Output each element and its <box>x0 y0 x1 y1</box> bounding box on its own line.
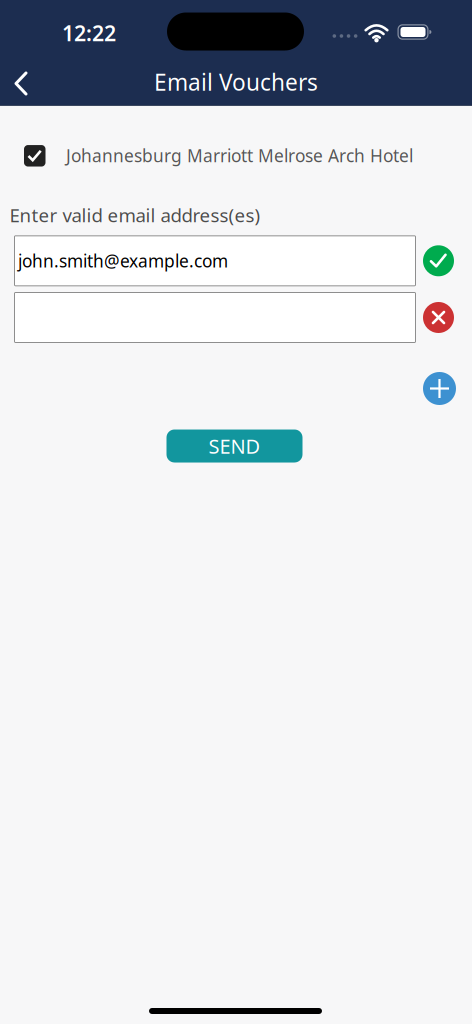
button[interactable]: Add email address <box>423 372 456 405</box>
button[interactable]: Email address 2 <box>14 292 416 343</box>
staticText: john.smith@example.com <box>18 249 228 272</box>
staticText: Johannesburg Marriott Melrose Arch Hotel <box>66 144 413 167</box>
button[interactable]: SEND <box>166 429 302 462</box>
staticText: 12:22 <box>62 19 116 47</box>
staticText: Email Vouchers <box>154 67 318 97</box>
staticText: SEND <box>208 433 260 459</box>
button[interactable]: Johannesburg Marriott Melrose Arch Hotel… <box>24 145 45 167</box>
button[interactable]: Back <box>0 61 43 105</box>
button[interactable]: Email address 1 <box>14 235 416 286</box>
staticText: Enter valid email address(es) <box>9 203 260 227</box>
